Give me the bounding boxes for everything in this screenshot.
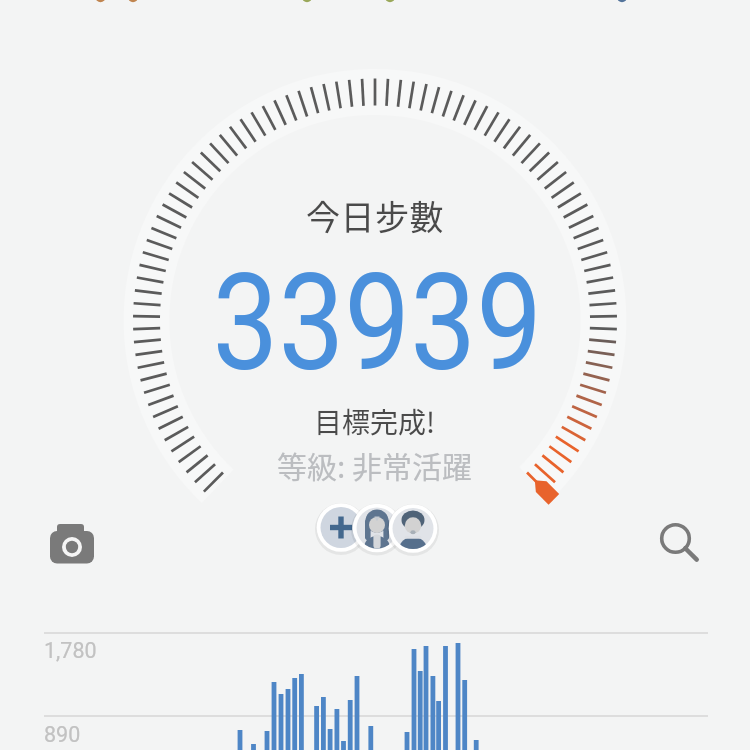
staticText: 今日步數 [306, 191, 444, 240]
staticText: 目標完成! [314, 401, 436, 442]
staticText: 1,780 [44, 638, 97, 663]
staticText: 等級: 非常活躍 [277, 443, 473, 486]
staticText: 890 [44, 722, 81, 747]
button[interactable] [314, 500, 438, 558]
button[interactable] [650, 518, 706, 574]
button[interactable] [44, 518, 100, 574]
staticText: 33939 [213, 245, 542, 402]
